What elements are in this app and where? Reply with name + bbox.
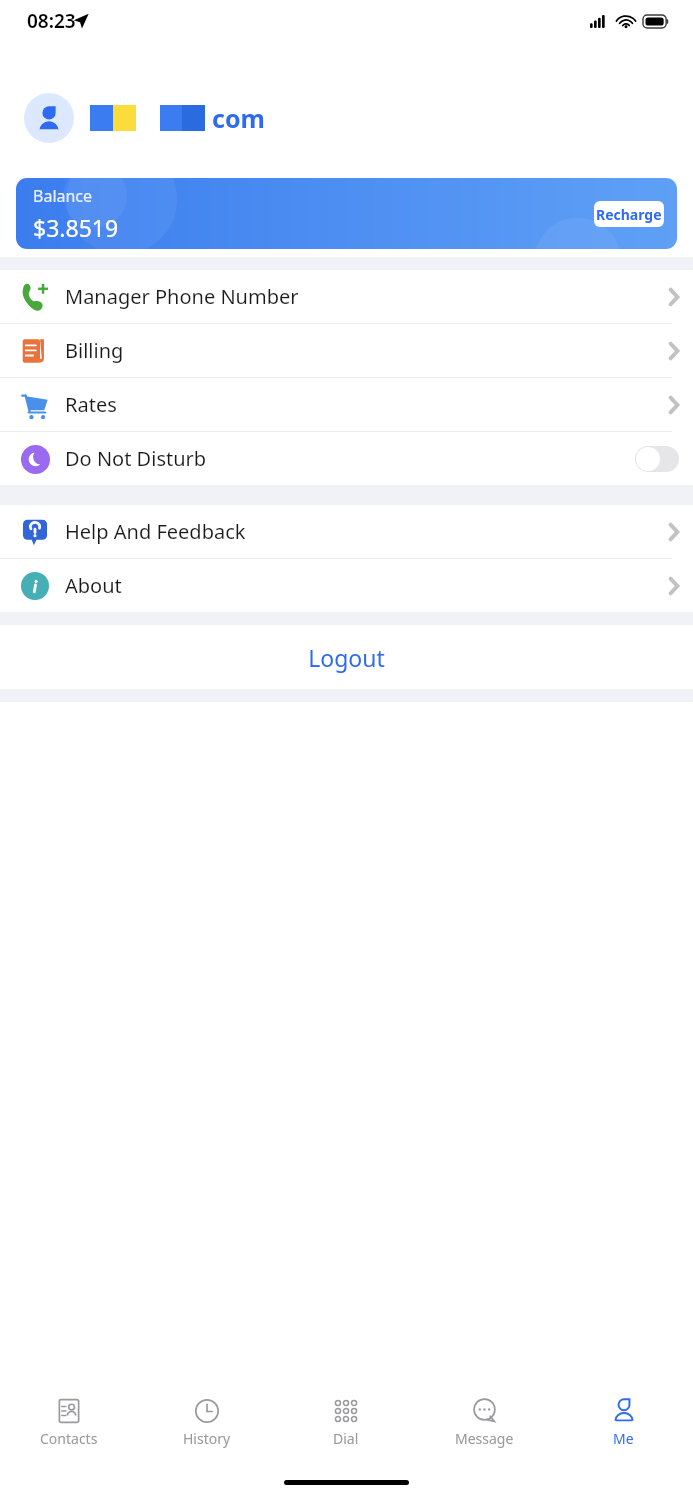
button[interactable]: About [0,559,693,612]
staticText: Rates [65,391,117,418]
staticText: Do Not Disturb [65,445,207,472]
staticText: Balance [33,185,93,207]
button[interactable]: Balance [16,178,677,249]
button[interactable]: Billing [0,324,693,377]
staticText: Manager Phone Number [65,283,299,310]
staticText: Contacts [40,1429,98,1448]
staticText: Dial [333,1429,359,1448]
staticText: Message [455,1429,514,1448]
staticText: Logout [308,642,385,673]
button[interactable]: Message [415,1386,554,1470]
button[interactable]: Recharge [594,201,664,227]
staticText: com [212,101,265,135]
staticText: 08:23 [27,8,76,34]
button[interactable]: Help And Feedback [0,505,693,558]
button[interactable]: Logout [0,625,693,689]
button[interactable]: Do Not Disturb toggle [635,446,679,472]
button[interactable]: Manager Phone Number [0,270,693,323]
staticText: Help And Feedback [65,518,246,545]
button[interactable]: History [138,1386,276,1470]
staticText: About [65,572,122,599]
staticText: Recharge [596,205,662,224]
staticText: $3.8519 [33,212,119,243]
staticText: History [183,1429,231,1448]
button[interactable]: Contacts [0,1386,138,1470]
staticText: Billing [65,337,124,364]
button[interactable]: Dial [276,1386,415,1470]
staticText: Me [613,1429,634,1448]
button[interactable]: Me [554,1386,693,1470]
button[interactable]: Do Not Disturb [0,432,693,485]
button[interactable]: Rates [0,378,693,431]
